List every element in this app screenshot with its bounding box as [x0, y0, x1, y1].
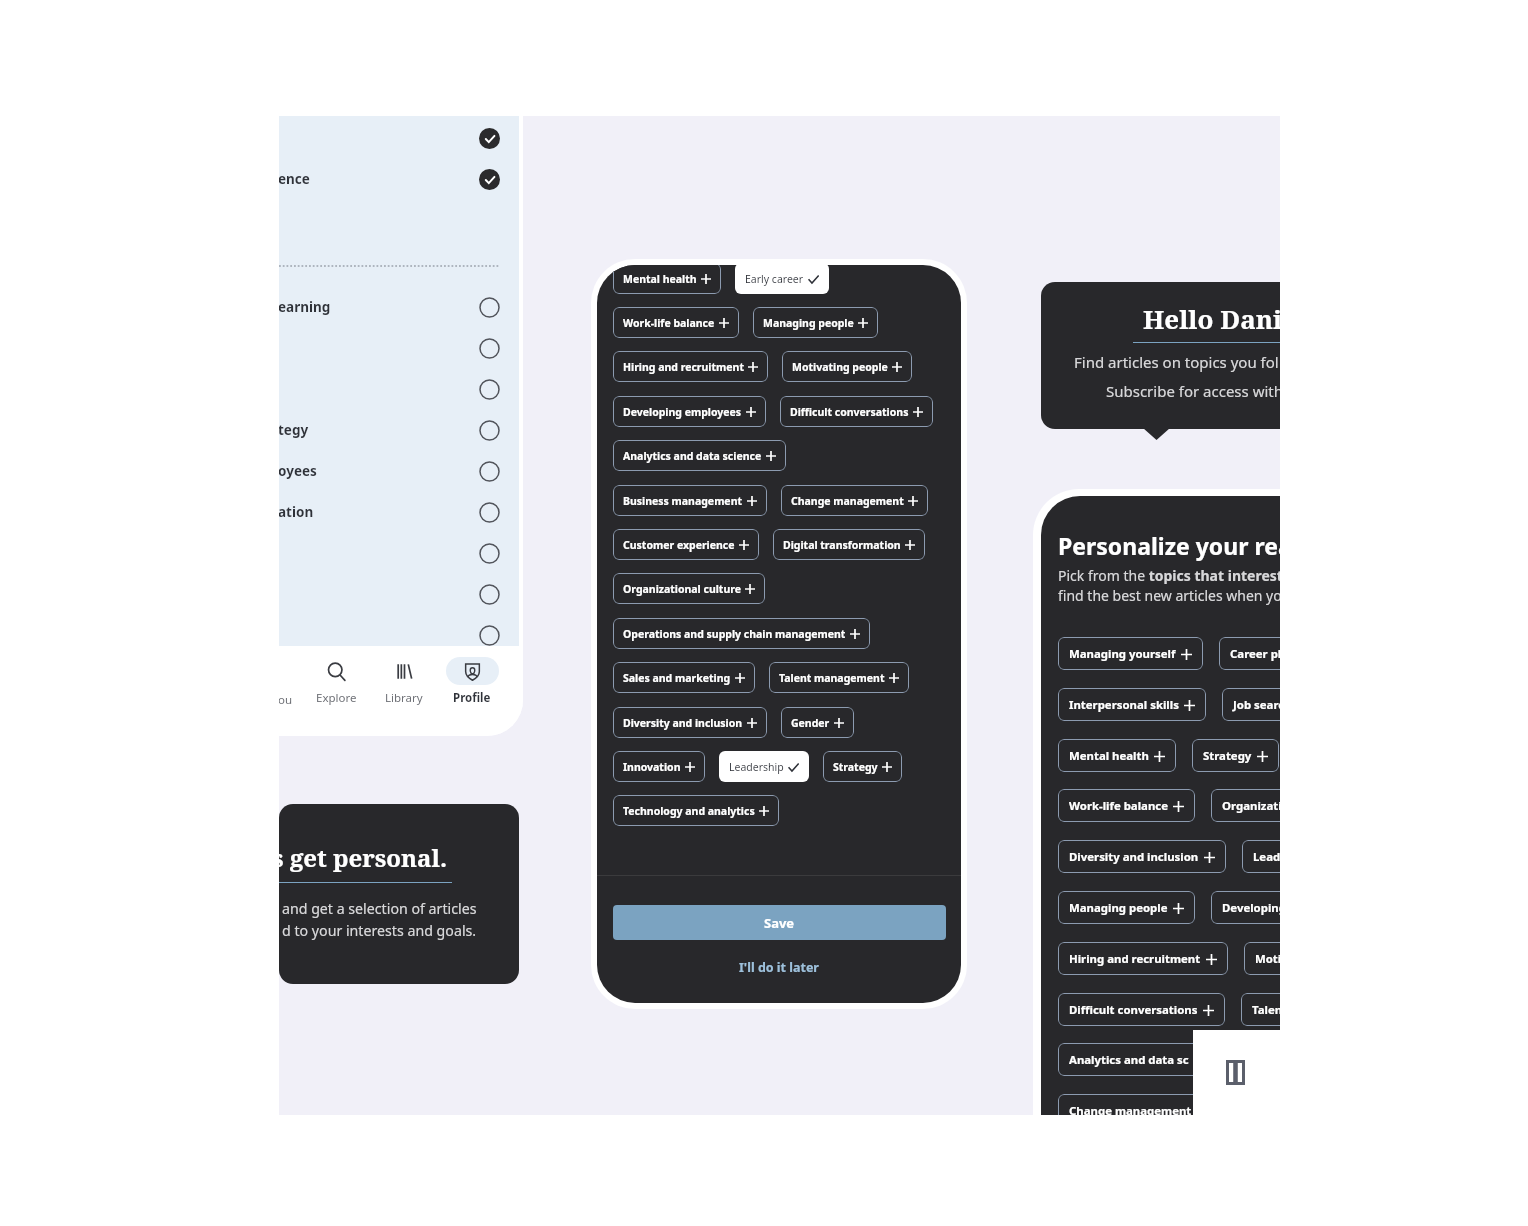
button[interactable]: Leadership: [719, 751, 809, 782]
button[interactable]: Change management: [781, 485, 928, 516]
button[interactable]: Digital transformation: [773, 529, 925, 560]
staticText: Early career: [745, 272, 804, 286]
button[interactable]: Topic: [479, 420, 500, 441]
button[interactable]: Profile: [438, 657, 506, 717]
staticText: Organizati: [1222, 798, 1280, 814]
button[interactable]: Selected topic: [479, 128, 500, 149]
button[interactable]: Managing people: [753, 307, 878, 338]
button[interactable]: Selected topic: [279, 118, 511, 159]
staticText: ou: [279, 692, 293, 708]
button[interactable]: Analytics and data sc: [1058, 1043, 1216, 1076]
button[interactable]: Topic: [479, 338, 500, 359]
button[interactable]: Organizational culture: [613, 573, 765, 604]
button[interactable]: Work-life balance: [613, 307, 739, 338]
button[interactable]: Diversity and inclusion: [613, 707, 767, 738]
button[interactable]: Mental health: [613, 265, 721, 294]
staticText: Let's get personal.: [279, 841, 447, 874]
staticText: Hiring and recruitment: [1069, 951, 1201, 967]
staticText: Gender: [791, 716, 830, 730]
button[interactable]: Pause: [1226, 1060, 1245, 1085]
staticText: Talent management: [779, 671, 885, 685]
button[interactable]: Career pl: [1219, 637, 1280, 670]
button[interactable]: Motiv: [1244, 942, 1280, 975]
button[interactable]: Customer experience: [613, 529, 759, 560]
staticText: Strategy: [833, 760, 878, 774]
button[interactable]: Developing employees: [613, 396, 766, 427]
button[interactable]: Topic: [479, 461, 500, 482]
button[interactable]: I'll do it later: [597, 956, 961, 978]
staticText: Developing employees: [623, 405, 742, 419]
staticText: and get a selection of articles: [282, 899, 477, 918]
staticText: Pick from the topics that interest you: [1058, 566, 1280, 585]
button[interactable]: Library: [370, 657, 438, 717]
button[interactable]: Topic: [479, 379, 500, 400]
button[interactable]: ation: [279, 492, 511, 533]
button[interactable]: Early career: [735, 265, 829, 294]
button[interactable]: tegy: [279, 410, 511, 451]
button[interactable]: ence: [279, 159, 511, 200]
button[interactable]: Operations and supply chain management: [613, 618, 870, 649]
button[interactable]: Interpersonal skills: [1058, 688, 1206, 721]
staticText: Difficult conversations: [790, 405, 909, 419]
button[interactable]: Analytics and data science: [613, 440, 786, 471]
button[interactable]: Topic: [479, 584, 500, 605]
button[interactable]: Gender: [781, 707, 854, 738]
staticText: Difficult conversations: [1069, 1002, 1198, 1018]
button[interactable]: Difficult conversations: [780, 396, 933, 427]
staticText: Find articles on topics you follow.: [1074, 352, 1280, 372]
button[interactable]: Developing: [1211, 891, 1280, 924]
button[interactable]: Save: [613, 905, 946, 940]
button[interactable]: Topic: [479, 625, 500, 646]
button[interactable]: Innovation: [613, 751, 705, 782]
staticText: Organizational culture: [623, 582, 741, 596]
button[interactable]: Topic: [479, 297, 500, 318]
button[interactable]: Lead: [1242, 840, 1280, 873]
button[interactable]: Topic: [279, 328, 511, 369]
button[interactable]: Topic: [279, 615, 511, 656]
button[interactable]: Difficult conversations: [1058, 993, 1225, 1026]
staticText: oyees: [279, 462, 317, 480]
button[interactable]: Topic: [279, 533, 511, 574]
button[interactable]: Managing yourself: [1058, 637, 1203, 670]
staticText: ence: [279, 170, 310, 188]
button[interactable]: Topic: [479, 502, 500, 523]
staticText: Developing: [1222, 900, 1280, 916]
button[interactable]: Mental health: [1058, 739, 1176, 772]
button[interactable]: Strategy: [1192, 739, 1279, 772]
button[interactable]: Change management: [1058, 1094, 1219, 1115]
button[interactable]: Explore: [302, 657, 370, 717]
button[interactable]: Diversity and inclusion: [1058, 840, 1226, 873]
staticText: Career pl: [1230, 646, 1280, 662]
staticText: d to your interests and goals.: [282, 921, 477, 940]
button[interactable]: Selected topic: [479, 169, 500, 190]
staticText: Personalize your reading: [1058, 530, 1280, 561]
button[interactable]: Job searc: [1222, 688, 1280, 721]
button[interactable]: Strategy: [823, 751, 902, 782]
staticText: Save: [764, 914, 795, 932]
button[interactable]: earning: [279, 287, 511, 328]
button[interactable]: Motivating people: [782, 351, 912, 382]
staticText: Sales and marketing: [623, 671, 731, 685]
button[interactable]: Organizati: [1211, 789, 1280, 822]
button[interactable]: Managing people: [1058, 891, 1195, 924]
button[interactable]: Talent management: [769, 662, 909, 693]
button[interactable]: Topic: [479, 543, 500, 564]
button[interactable]: Talen: [1241, 993, 1280, 1026]
button[interactable]: Business management: [613, 485, 767, 516]
staticText: earning: [279, 298, 331, 316]
button[interactable]: Hiring and recruitment: [1058, 942, 1228, 975]
staticText: Operations and supply chain management: [623, 627, 846, 641]
staticText: Managing people: [763, 316, 854, 330]
staticText: Mental health: [1069, 748, 1149, 764]
button[interactable]: Work-life balance: [1058, 789, 1195, 822]
button[interactable]: oyees: [279, 451, 511, 492]
staticText: Managing yourself: [1069, 646, 1176, 662]
button[interactable]: Hiring and recruitment: [613, 351, 768, 382]
button[interactable]: Technology and analytics: [613, 795, 779, 826]
button[interactable]: Topic: [279, 369, 511, 410]
staticText: Job searc: [1233, 697, 1280, 713]
button[interactable]: Topic: [279, 574, 511, 615]
button[interactable]: Sales and marketing: [613, 662, 755, 693]
staticText: Diversity and inclusion: [1069, 849, 1199, 865]
staticText: Leadership: [729, 760, 784, 774]
